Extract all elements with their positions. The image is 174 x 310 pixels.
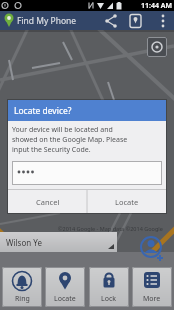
button[interactable] <box>156 11 170 30</box>
staticText: showed on the Google Map. Please <box>12 135 128 145</box>
staticText: Find My Phone <box>17 15 77 27</box>
staticText: Wilson Ye <box>6 237 42 248</box>
staticText: More <box>143 294 161 304</box>
staticText: 11:44 AM <box>141 1 172 11</box>
button[interactable] <box>147 37 167 57</box>
staticText: Ring <box>15 294 30 304</box>
staticText: ©2014 Google - Map data ©2014 Google <box>58 225 163 232</box>
button[interactable] <box>101 12 119 29</box>
button[interactable] <box>138 234 164 262</box>
staticText: input the Security Code. <box>12 145 91 155</box>
staticText: Locate device? <box>14 105 72 117</box>
button[interactable]: Wilson Ye <box>0 232 117 252</box>
button[interactable]: More <box>132 267 172 307</box>
staticText: Locate <box>115 197 139 207</box>
button[interactable] <box>126 12 144 29</box>
staticText: Lock <box>101 294 117 304</box>
button[interactable] <box>12 161 162 185</box>
button[interactable]: Locate <box>45 267 85 307</box>
staticText: Cancel <box>36 197 60 207</box>
button[interactable]: Ring <box>2 267 42 307</box>
button[interactable]: Cancel <box>8 190 87 213</box>
button[interactable]: Locate <box>87 190 166 213</box>
staticText: Your device will be located and <box>12 125 113 135</box>
button[interactable]: Lock <box>89 267 129 307</box>
staticText: Locate <box>54 294 76 304</box>
